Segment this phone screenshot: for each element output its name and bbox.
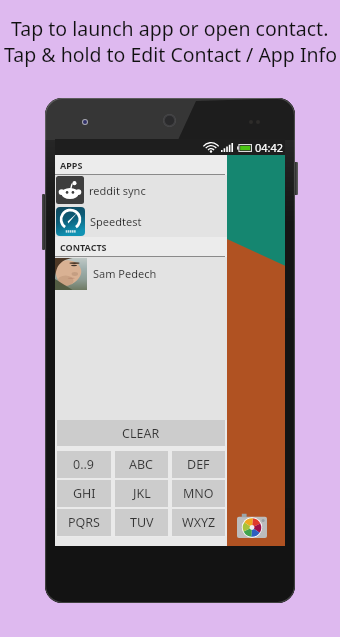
staticText: CONTACTS — [60, 241, 107, 253]
staticText: ABC — [129, 456, 154, 473]
button[interactable]: reddit sync — [55, 175, 227, 205]
staticText: 0..9 — [73, 456, 95, 473]
button[interactable]: DEF — [172, 451, 225, 478]
staticText: APPS — [60, 159, 83, 171]
staticText: PQRS — [68, 514, 100, 531]
button[interactable]: Power — [294, 162, 298, 195]
staticText: Sam Pedech — [93, 266, 157, 281]
staticText: CLEAR — [122, 425, 160, 442]
staticText: MNO — [183, 485, 214, 502]
button[interactable]: Speedtest — [55, 205, 227, 237]
button[interactable]: ABC — [115, 451, 168, 478]
button[interactable]: GHI — [57, 480, 111, 507]
button[interactable]: Volume — [42, 194, 45, 250]
button[interactable]: PQRS — [57, 509, 111, 536]
staticText: GHI — [73, 485, 96, 502]
button[interactable]: JKL — [115, 480, 168, 507]
staticText: Tap to launch app or open contact. — [11, 15, 329, 42]
button[interactable]: MNO — [172, 480, 225, 507]
staticText: 04:42 — [255, 140, 284, 155]
button[interactable]: WXYZ — [172, 509, 225, 536]
staticText: TUV — [130, 514, 154, 531]
staticText: reddit sync — [89, 183, 146, 198]
button[interactable]: 0..9 — [57, 451, 111, 478]
button[interactable]: Camera — [237, 513, 267, 538]
staticText: WXYZ — [182, 514, 216, 531]
staticText: JKL — [133, 485, 151, 502]
staticText: Speedtest — [90, 214, 142, 229]
button[interactable]: CLEAR — [57, 420, 225, 446]
staticText: Tap & hold to Edit Contact / App Info — [4, 41, 338, 68]
staticText: DEF — [187, 456, 210, 473]
button[interactable]: TUV — [115, 509, 168, 536]
button[interactable]: Sam Pedech — [55, 257, 227, 290]
